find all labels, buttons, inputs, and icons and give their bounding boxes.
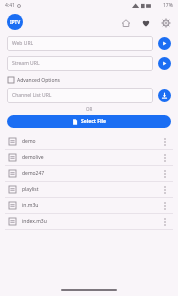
staticText: Select File xyxy=(81,118,106,125)
button[interactable]: Select File xyxy=(7,115,171,128)
button[interactable]: More options for demo247 xyxy=(161,167,169,180)
staticText: playlist xyxy=(22,186,39,193)
button[interactable]: IPTV logo xyxy=(7,14,23,30)
button[interactable]: demo xyxy=(0,134,178,149)
button[interactable]: More options for demo xyxy=(161,135,169,148)
button[interactable]: index.m3u xyxy=(0,214,178,229)
button[interactable]: Download channel list xyxy=(158,89,171,102)
button[interactable]: Favorites xyxy=(140,17,151,28)
button[interactable]: Home xyxy=(120,17,131,28)
staticText: index.m3u xyxy=(22,218,47,225)
staticText: Web URL xyxy=(12,40,34,47)
staticText: 17% xyxy=(163,2,173,9)
button[interactable]: Web URL xyxy=(7,36,153,51)
staticText: demo xyxy=(22,138,36,145)
staticText: demolive xyxy=(22,154,44,161)
button[interactable]: demolive xyxy=(0,150,178,165)
button[interactable]: More options for demolive xyxy=(161,151,169,164)
button[interactable]: More options for index.m3u xyxy=(161,215,169,228)
button[interactable]: playlist xyxy=(0,182,178,197)
staticText: Channel List URL xyxy=(12,92,52,99)
button[interactable]: Advanced Options xyxy=(8,75,170,85)
staticText: demo247 xyxy=(22,170,45,177)
button[interactable]: demo247 xyxy=(0,166,178,181)
button[interactable]: More options for playlist xyxy=(161,183,169,196)
button[interactable]: Play stream URL xyxy=(158,57,171,70)
button[interactable]: in.m3u xyxy=(0,198,178,213)
button[interactable]: Channel List URL xyxy=(7,88,153,103)
button[interactable]: Settings xyxy=(160,17,171,28)
staticText: IPTV xyxy=(10,19,21,25)
staticText: Stream URL xyxy=(12,60,40,67)
staticText: Advanced Options xyxy=(17,77,60,84)
staticText: in.m3u xyxy=(22,202,39,209)
button[interactable]: More options for in.m3u xyxy=(161,199,169,212)
staticText: OR xyxy=(86,106,93,112)
button[interactable]: Play web URL xyxy=(158,37,171,50)
button[interactable]: Stream URL xyxy=(7,56,153,71)
staticText: 4:41 xyxy=(5,2,15,9)
